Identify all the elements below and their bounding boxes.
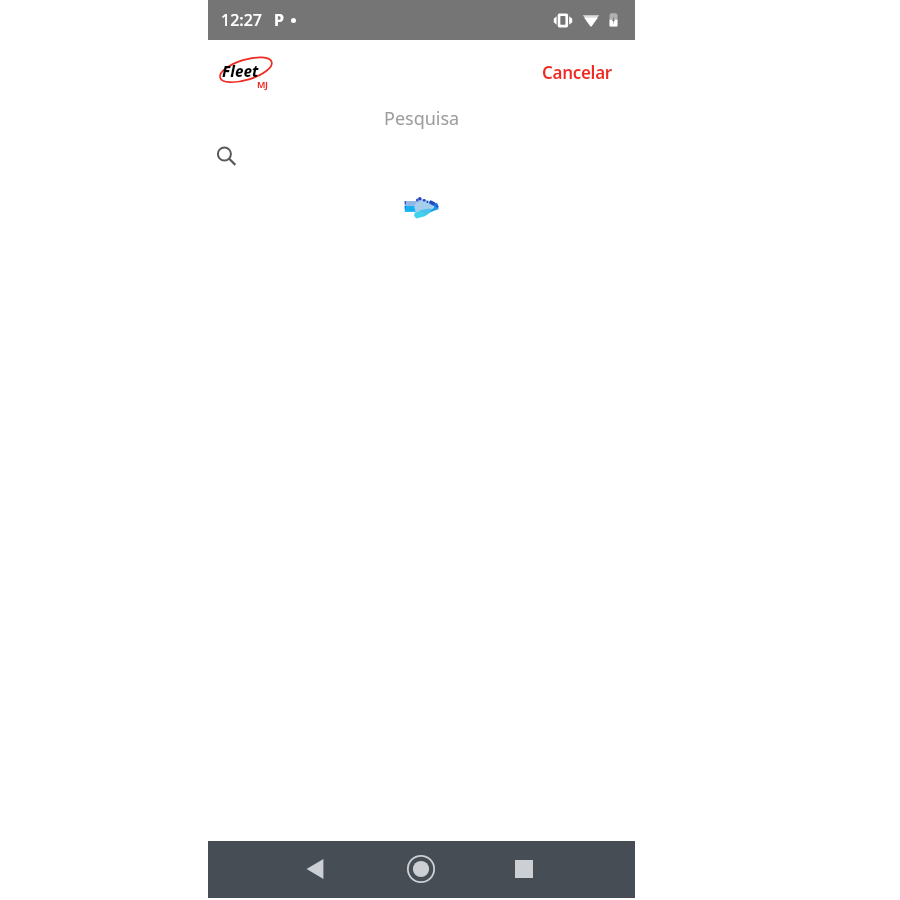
staticText: Fleet (222, 61, 259, 81)
button[interactable]: Search (208, 138, 244, 174)
button[interactable]: Fleet logo (218, 54, 276, 90)
staticText: Pesquisa (384, 106, 460, 131)
staticText: Cancelar (542, 61, 612, 84)
button[interactable]: Home (393, 841, 449, 897)
staticText: 12:27 (221, 9, 262, 31)
staticText: P (274, 9, 284, 31)
button[interactable]: Back (287, 841, 343, 897)
staticText: MJ (257, 78, 268, 90)
button[interactable]: Recents (496, 841, 552, 897)
button[interactable]: Cancelar (532, 55, 622, 90)
